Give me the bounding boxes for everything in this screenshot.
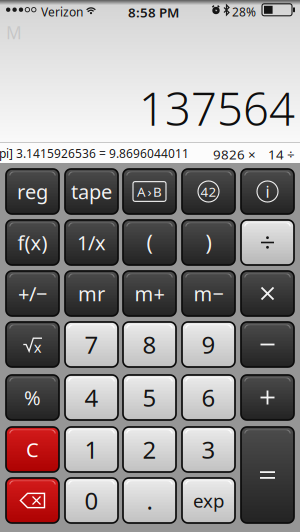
staticText: m+: [134, 280, 164, 307]
button[interactable]: Constants: [182, 169, 235, 214]
button[interactable]: C: [6, 427, 59, 472]
staticText: C: [26, 436, 39, 463]
staticText: 8:58 PM: [128, 3, 179, 21]
staticText: 1: [84, 434, 98, 465]
button[interactable]: A to B: [123, 169, 176, 214]
staticText: 9826 ×: [213, 145, 256, 163]
button[interactable]: Add: [241, 375, 294, 420]
staticText: 2: [142, 434, 156, 465]
button[interactable]: Delete: [6, 478, 59, 523]
button[interactable]: 4: [65, 375, 118, 420]
staticText: 14 ÷: [268, 145, 295, 163]
staticText: (: [146, 228, 152, 257]
staticText: 8: [142, 329, 156, 360]
staticText: Verizon: [41, 4, 83, 20]
staticText: 9: [201, 329, 215, 360]
button[interactable]: 6: [182, 375, 235, 420]
button[interactable]: 2: [123, 427, 176, 472]
button[interactable]: Square root: [6, 322, 59, 367]
staticText: 42: [200, 183, 216, 200]
button[interactable]: 7: [65, 322, 118, 367]
staticText: 137564: [139, 78, 295, 138]
staticText: exp: [193, 488, 224, 513]
staticText: M: [6, 21, 22, 44]
button[interactable]: Info: [241, 169, 294, 214]
staticText: A: [137, 183, 146, 200]
staticText: 3: [201, 434, 215, 465]
staticText: 5: [142, 382, 156, 413]
staticText: +/−: [18, 280, 47, 307]
staticText: ): [205, 228, 211, 257]
staticText: 28%: [232, 4, 256, 20]
staticText: x: [34, 337, 42, 357]
staticText: ›: [147, 183, 151, 200]
staticText: pi] 3.1415926536 = 9.8696044011: [0, 145, 189, 161]
button[interactable]: (: [123, 220, 176, 265]
button[interactable]: .: [123, 478, 176, 523]
staticText: B: [153, 183, 162, 200]
button[interactable]: 1/x: [65, 220, 118, 265]
staticText: m−: [193, 280, 223, 307]
staticText: i: [265, 181, 269, 202]
staticText: %: [24, 384, 41, 411]
staticText: 1/x: [77, 229, 106, 256]
button[interactable]: 9: [182, 322, 235, 367]
button[interactable]: 3: [182, 427, 235, 472]
button[interactable]: reg: [6, 169, 59, 214]
button[interactable]: exp: [182, 478, 235, 523]
button[interactable]: tape: [65, 169, 118, 214]
button[interactable]: Multiply: [241, 271, 294, 316]
staticText: 6: [201, 382, 215, 413]
staticText: .: [146, 485, 152, 516]
button[interactable]: +/−: [6, 271, 59, 316]
staticText: 4: [84, 382, 98, 413]
button[interactable]: Divide: [241, 220, 294, 265]
staticText: 0: [84, 485, 98, 516]
staticText: reg: [17, 178, 48, 205]
button[interactable]: f(x): [6, 220, 59, 265]
button[interactable]: m−: [182, 271, 235, 316]
button[interactable]: Equals: [241, 427, 294, 523]
staticText: f(x): [17, 229, 47, 256]
staticText: mr: [78, 280, 105, 307]
button[interactable]: mr: [65, 271, 118, 316]
button[interactable]: 8: [123, 322, 176, 367]
button[interactable]: m+: [123, 271, 176, 316]
button[interactable]: 1: [65, 427, 118, 472]
button[interactable]: Subtract: [241, 322, 294, 367]
staticText: 7: [84, 329, 98, 360]
staticText: tape: [71, 178, 112, 205]
button[interactable]: %: [6, 375, 59, 420]
button[interactable]: 5: [123, 375, 176, 420]
button[interactable]: 0: [65, 478, 118, 523]
button[interactable]: ): [182, 220, 235, 265]
